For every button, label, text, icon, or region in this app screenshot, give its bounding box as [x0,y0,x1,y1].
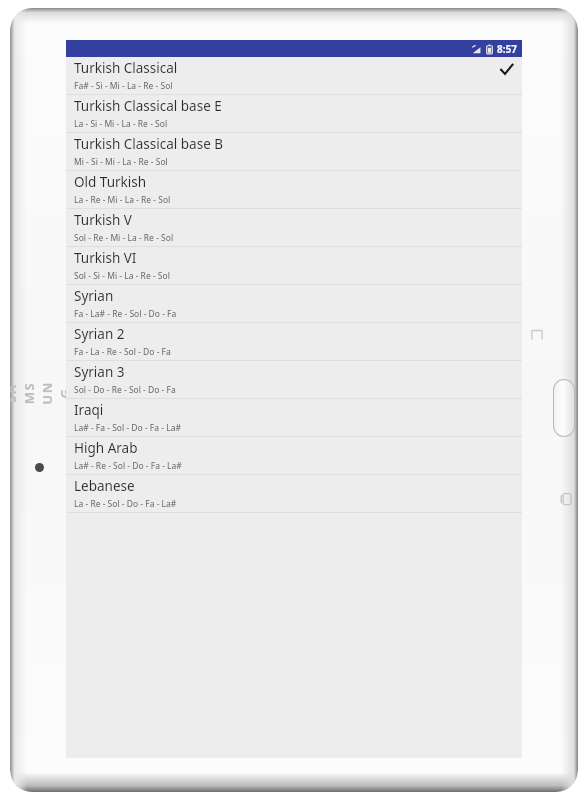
staticText: La# - Fa - Sol - Do - Fa - La# [74,422,181,434]
staticText: La - Si - Mi - La - Re - Sol [74,118,168,130]
staticText: Lebanese [74,477,135,495]
button[interactable]: Turkish V [66,209,522,247]
staticText: Fa# - Si - Mi - La - Re - Sol [74,80,173,92]
button[interactable]: Iraqi [66,399,522,437]
staticText: La# - Re - Sol - Do - Fa - La# [74,460,182,472]
button[interactable]: Lebanese [66,475,522,513]
staticText: Turkish Classical base B [74,135,224,153]
staticText: Turkish V [74,211,132,229]
button[interactable]: Turkish VI [66,247,522,285]
staticText: La - Re - Sol - Do - Fa - La# [74,498,177,510]
button[interactable]: Turkish Classical base E [66,95,522,133]
staticText: SAMSUNG [10,379,74,407]
button[interactable]: Turkish Classical [66,57,522,95]
button[interactable]: Home [554,380,574,436]
staticText: Syrian 3 [74,363,125,381]
button[interactable]: Syrian 3 [66,361,522,399]
staticText: Fa - La# - Re - Sol - Do - Fa [74,308,177,320]
button[interactable]: Recents [559,492,573,506]
staticText: La - Re - Mi - La - Re - Sol [74,194,171,206]
staticText: Iraqi [74,401,104,419]
staticText: High Arab [74,439,138,457]
button[interactable]: Back [529,326,545,342]
staticText: Sol - Do - Re - Sol - Do - Fa [74,384,176,396]
staticText: Old Turkish [74,173,147,191]
button[interactable]: Turkish Classical base B [66,133,522,171]
staticText: 8:57 [497,42,517,56]
staticText: Syrian 2 [74,325,125,343]
staticText: Turkish VI [74,249,137,267]
button[interactable]: Syrian [66,285,522,323]
staticText: Turkish Classical [74,59,178,77]
button[interactable]: Syrian 2 [66,323,522,361]
staticText: Sol - Si - Mi - La - Re - Sol [74,270,170,282]
staticText: Turkish Classical base E [74,97,222,115]
staticText: Fa - La - Re - Sol - Do - Fa [74,346,171,358]
staticText: Mi - Si - Mi - La - Re - Sol [74,156,168,168]
button[interactable]: Old Turkish [66,171,522,209]
staticText: Syrian [74,287,114,305]
staticText: Sol - Re - Mi - La - Re - Sol [74,232,174,244]
button[interactable]: High Arab [66,437,522,475]
